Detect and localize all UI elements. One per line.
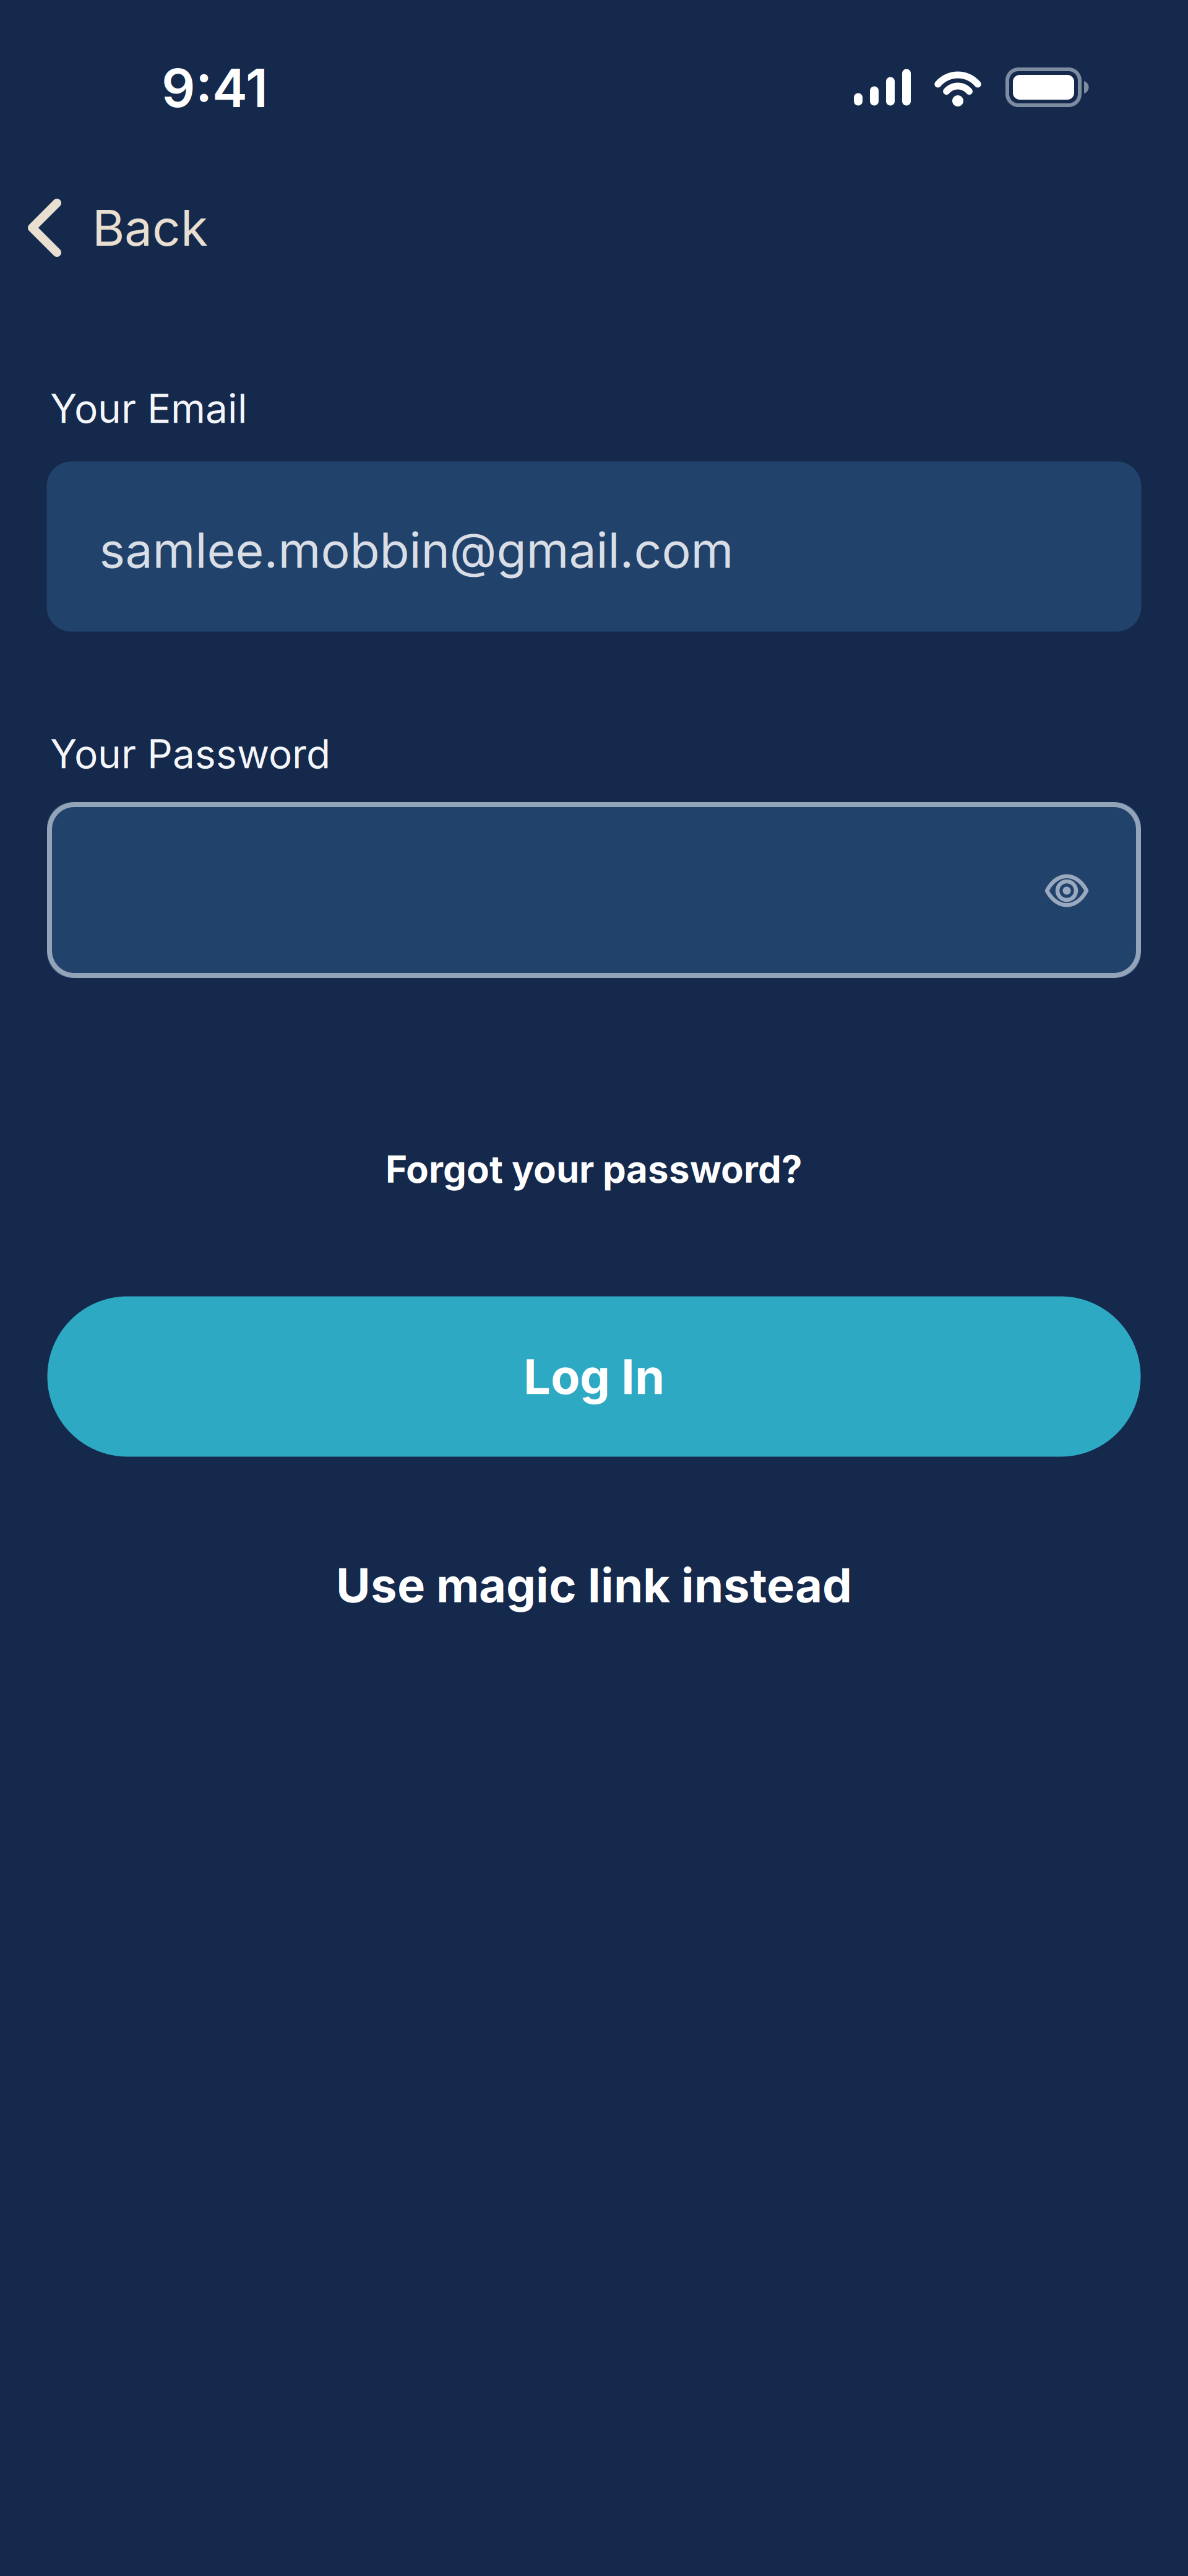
button[interactable]: Show password xyxy=(1044,873,1089,908)
button[interactable]: Back xyxy=(32,198,208,258)
staticText: Back xyxy=(92,198,208,258)
staticText: Forgot your password? xyxy=(385,1147,803,1192)
staticText: 9:41 xyxy=(161,56,268,120)
staticText: Your Password xyxy=(50,730,330,778)
staticText: Use magic link instead xyxy=(336,1557,852,1614)
button[interactable]: Log In xyxy=(47,1296,1141,1457)
staticText: Your Email xyxy=(50,385,247,432)
button[interactable]: Use magic link instead xyxy=(336,1557,852,1614)
button[interactable]: samlee.mobbin@gmail.com xyxy=(47,461,1141,632)
staticText: samlee.mobbin@gmail.com xyxy=(99,521,734,580)
staticText: Log In xyxy=(523,1348,665,1405)
button[interactable] xyxy=(47,802,1141,978)
button[interactable]: Forgot your password? xyxy=(385,1147,803,1192)
